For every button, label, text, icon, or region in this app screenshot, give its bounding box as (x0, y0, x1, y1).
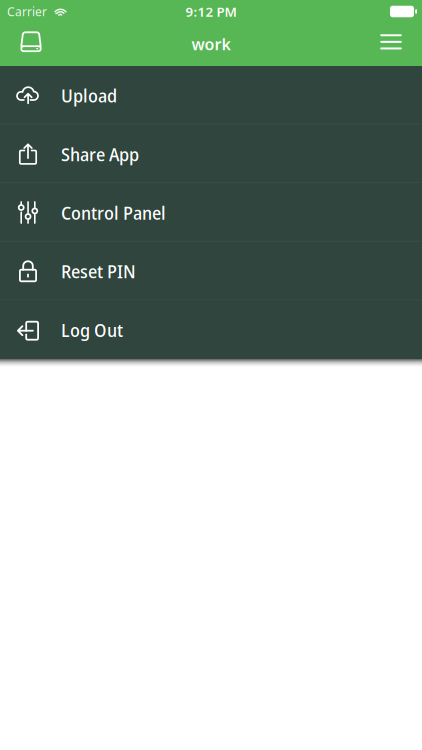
button[interactable]: Upload (0, 66, 422, 125)
staticText: work (191, 33, 230, 55)
button[interactable]: Menu (360, 23, 422, 66)
button[interactable]: Share App (0, 125, 422, 183)
staticText: 9:12 PM (185, 3, 236, 20)
staticText: Log Out (61, 317, 123, 342)
staticText: Upload (61, 83, 117, 108)
button[interactable]: Reset PIN (0, 242, 422, 300)
button[interactable]: Control Panel (0, 183, 422, 242)
button[interactable]: Drive (0, 23, 62, 66)
button[interactable]: Log Out (0, 300, 422, 359)
staticText: Share App (61, 141, 139, 167)
staticText: Carrier (7, 3, 47, 19)
staticText: Control Panel (61, 200, 166, 225)
staticText: Reset PIN (61, 258, 136, 284)
